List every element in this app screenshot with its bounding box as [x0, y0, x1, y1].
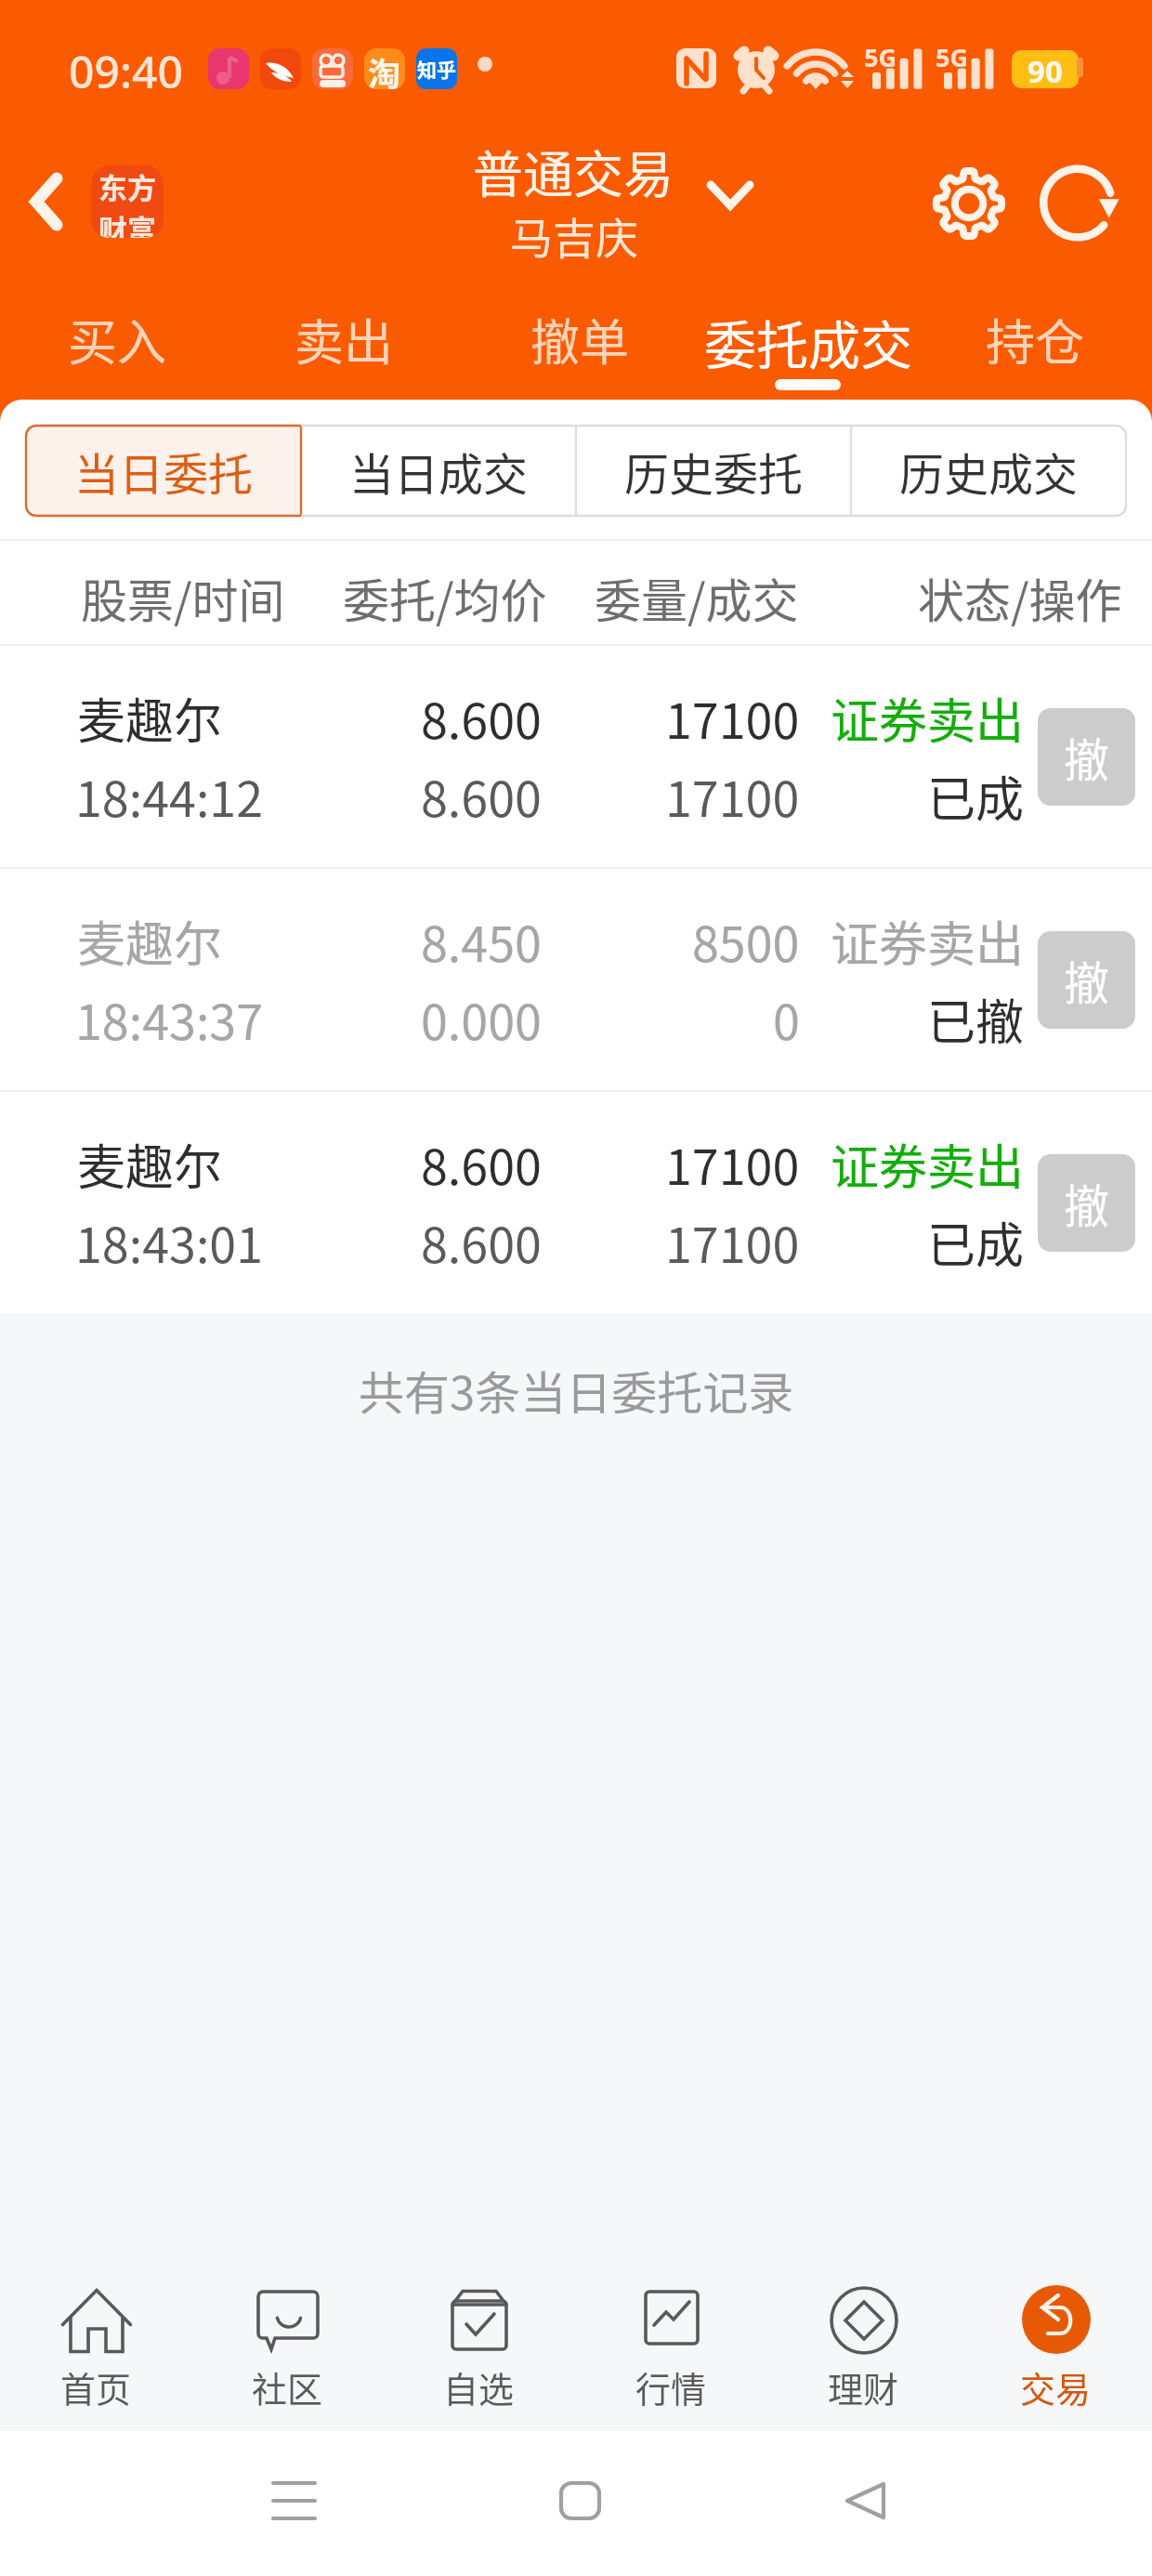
button[interactable]: 历史委托	[576, 426, 851, 516]
staticText: 委托/均价	[343, 564, 547, 631]
staticText: 淘	[368, 48, 401, 89]
button[interactable]: 行情	[575, 2242, 767, 2431]
staticText: 委量/成交	[595, 564, 799, 631]
staticText: 90	[1028, 50, 1063, 88]
staticText: 股票/时间	[81, 564, 285, 631]
staticText: 5G	[864, 40, 897, 74]
button[interactable]: Home	[533, 2454, 626, 2547]
button[interactable]: 麦趣尔	[0, 646, 1152, 867]
staticText: 撤	[1064, 724, 1110, 790]
staticText: 当日委托	[74, 439, 254, 504]
button[interactable]: East Money	[91, 165, 164, 238]
staticText: 理财	[828, 2361, 899, 2412]
staticText: 已成	[927, 761, 1025, 831]
button[interactable]: 撤	[1038, 1154, 1135, 1252]
staticText: 历史委托	[624, 439, 804, 504]
staticText: 历史成交	[899, 439, 1079, 504]
staticText: 17100	[665, 683, 800, 753]
staticText: 09:40	[69, 41, 183, 101]
staticText: 证券卖出	[831, 1129, 1025, 1199]
staticText: 持仓	[986, 304, 1084, 375]
staticText: 委托成交	[704, 304, 912, 379]
button[interactable]: Back	[2, 157, 91, 246]
button[interactable]: 当日委托	[26, 426, 301, 516]
staticText: 17100	[665, 1207, 800, 1277]
button[interactable]: Settings	[926, 161, 1011, 245]
button[interactable]: 持仓	[975, 291, 1095, 400]
staticText: 已成	[927, 1207, 1025, 1277]
button[interactable]: 当日成交	[301, 426, 576, 516]
staticText: 麦趣尔	[77, 1129, 223, 1199]
staticText: 证券卖出	[831, 906, 1025, 976]
button[interactable]: 普通交易	[435, 113, 769, 253]
staticText: 8500	[692, 906, 800, 976]
staticText: 0	[773, 984, 800, 1054]
staticText: 普通交易	[473, 135, 674, 207]
staticText: 17100	[665, 1129, 800, 1199]
staticText: 17100	[665, 761, 800, 831]
staticText: 麦趣尔	[77, 683, 223, 753]
staticText: 当日成交	[349, 439, 529, 504]
button[interactable]: 撤	[1038, 931, 1135, 1029]
staticText: 8.450	[421, 906, 542, 976]
staticText: 卖出	[295, 304, 393, 375]
button[interactable]: 撤单	[519, 291, 640, 400]
staticText: 18:43:37	[75, 984, 264, 1054]
button[interactable]: 自选	[383, 2242, 575, 2431]
staticText: 证券卖出	[831, 683, 1025, 753]
staticText: 8.600	[421, 761, 542, 831]
button[interactable]: 社区	[191, 2242, 383, 2431]
staticText: 0.000	[421, 984, 542, 1054]
button[interactable]: Recents	[247, 2454, 340, 2547]
button[interactable]: 麦趣尔	[0, 869, 1152, 1090]
staticText: 8.600	[421, 683, 542, 753]
staticText: 社区	[252, 2361, 323, 2412]
staticText: 撤单	[530, 304, 629, 375]
button[interactable]: 首页	[0, 2242, 191, 2431]
staticText: 麦趣尔	[77, 906, 223, 976]
button[interactable]: 交易	[960, 2242, 1152, 2431]
staticText: 马吉庆	[510, 204, 638, 267]
button[interactable]: 卖出	[283, 291, 404, 400]
button[interactable]: 买入	[57, 291, 177, 400]
staticText: 8.600	[421, 1129, 542, 1199]
staticText: 撤	[1064, 947, 1110, 1013]
button[interactable]: 理财	[767, 2242, 960, 2431]
staticText: 买入	[68, 304, 166, 375]
button[interactable]: 委托成交	[694, 291, 922, 400]
staticText: 18:44:12	[75, 761, 264, 831]
staticText: 5G	[936, 40, 968, 74]
staticText: 首页	[60, 2361, 132, 2412]
button[interactable]: 历史成交	[851, 426, 1126, 516]
button[interactable]: Back	[818, 2454, 911, 2547]
button[interactable]: 撤	[1038, 708, 1135, 806]
staticText: 东方	[98, 165, 156, 207]
staticText: 行情	[635, 2361, 707, 2412]
staticText: 撤	[1064, 1170, 1110, 1236]
staticText: 知乎	[417, 55, 456, 83]
staticText: 8.600	[421, 1207, 542, 1277]
staticText: 已撤	[927, 984, 1025, 1054]
staticText: 交易	[1020, 2361, 1092, 2412]
staticText: 自选	[443, 2361, 515, 2412]
button[interactable]: 麦趣尔	[0, 1092, 1152, 1313]
staticText: 财富	[98, 207, 156, 238]
staticText: 状态/操作	[918, 564, 1122, 631]
staticText: 共有3条当日委托记录	[359, 1357, 794, 1423]
staticText: 18:43:01	[75, 1207, 264, 1277]
button[interactable]: Refresh	[1040, 161, 1124, 245]
